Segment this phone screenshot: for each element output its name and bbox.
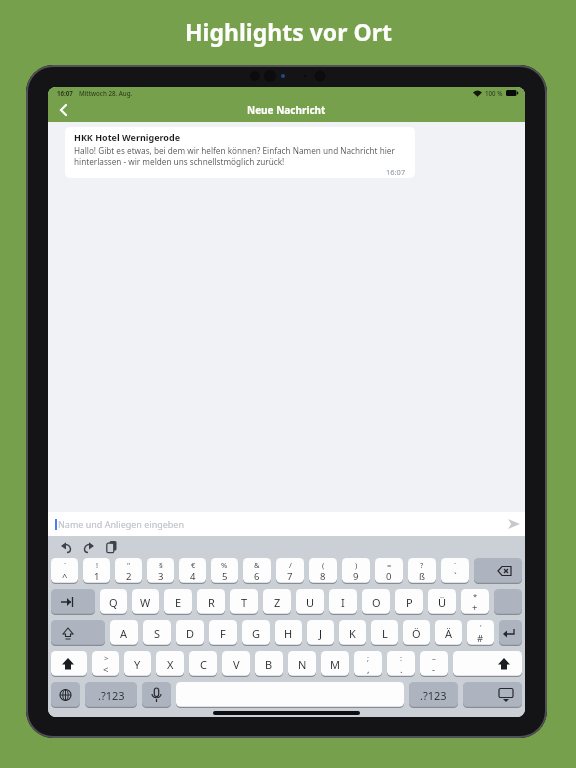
staticText: ?: [420, 560, 424, 570]
staticText: `: [454, 570, 457, 583]
staticText: 8: [320, 570, 326, 583]
button[interactable]: [474, 558, 522, 584]
staticText: ^: [62, 570, 68, 583]
staticText: Hallo! Gibt es etwas, bei dem wir helfen…: [74, 145, 395, 167]
button[interactable]: W: [132, 589, 159, 615]
button[interactable]: R: [197, 589, 225, 615]
staticText: =: [387, 560, 392, 570]
button[interactable]: >: [92, 651, 119, 677]
staticText: 16:07: [386, 167, 406, 175]
button[interactable]: [142, 682, 171, 708]
staticText: €: [191, 560, 196, 570]
button[interactable]: [51, 589, 95, 615]
button[interactable]: [51, 651, 87, 677]
button[interactable]: ": [115, 558, 142, 584]
button[interactable]: A: [110, 620, 138, 646]
button[interactable]: [176, 682, 404, 708]
button[interactable]: H: [275, 620, 302, 646]
button[interactable]: !: [83, 558, 110, 584]
staticText: 4: [190, 570, 196, 583]
staticText: +: [472, 601, 478, 614]
button[interactable]: E: [164, 589, 192, 615]
button[interactable]: O: [362, 589, 390, 615]
button[interactable]: Y: [124, 651, 151, 677]
button[interactable]: M: [321, 651, 349, 677]
staticText: Neue Nachricht: [247, 103, 326, 117]
staticText: 7: [287, 570, 293, 583]
button[interactable]: T: [230, 589, 258, 615]
button[interactable]: .?123: [85, 682, 137, 708]
button[interactable]: Q: [100, 589, 127, 615]
staticText: .: [400, 663, 403, 676]
staticText: ;: [367, 653, 370, 663]
button[interactable]: K: [339, 620, 366, 646]
button[interactable]: ': [467, 620, 494, 646]
button[interactable]: ´: [441, 558, 469, 584]
staticText: -: [432, 663, 436, 676]
button[interactable]: Ü: [428, 589, 456, 615]
button[interactable]: =: [375, 558, 403, 584]
staticText: X: [167, 657, 174, 672]
button[interactable]: Ö: [403, 620, 430, 646]
staticText: G: [252, 626, 261, 641]
staticText: U: [306, 595, 315, 610]
button[interactable]: [51, 620, 105, 646]
button[interactable]: ): [342, 558, 370, 584]
staticText: Name und Anliegen eingeben: [58, 518, 185, 530]
staticText: I: [341, 595, 345, 610]
button[interactable]: I: [329, 589, 357, 615]
button[interactable]: X: [156, 651, 184, 677]
button[interactable]: V: [222, 651, 250, 677]
button[interactable]: –: [420, 651, 448, 677]
button[interactable]: /: [276, 558, 304, 584]
button[interactable]: :: [387, 651, 415, 677]
button[interactable]: *: [461, 589, 489, 615]
button[interactable]: J: [307, 620, 334, 646]
button[interactable]: &: [243, 558, 271, 584]
button[interactable]: U: [296, 589, 324, 615]
staticText: ß: [419, 570, 425, 583]
button[interactable]: `: [51, 558, 78, 584]
button[interactable]: Ä: [435, 620, 462, 646]
button[interactable]: G: [242, 620, 270, 646]
button[interactable]: .?123: [409, 682, 458, 708]
button[interactable]: S: [143, 620, 171, 646]
button[interactable]: §: [147, 558, 174, 584]
staticText: B: [265, 657, 273, 672]
button[interactable]: Name und Anliegen eingeben: [48, 512, 525, 536]
button[interactable]: HKK Hotel Wernigerode: [65, 127, 415, 178]
staticText: %: [221, 560, 228, 570]
staticText: P: [406, 595, 413, 610]
button[interactable]: (: [309, 558, 337, 584]
button[interactable]: [494, 589, 522, 615]
staticText: Ü: [438, 595, 447, 610]
button[interactable]: [463, 682, 522, 708]
staticText: D: [186, 626, 195, 641]
staticText: E: [175, 595, 182, 610]
button[interactable]: P: [395, 589, 423, 615]
staticText: .?123: [420, 688, 447, 703]
button[interactable]: B: [255, 651, 283, 677]
button[interactable]: €: [179, 558, 206, 584]
staticText: #: [477, 632, 484, 645]
button[interactable]: F: [209, 620, 237, 646]
button[interactable]: [51, 682, 80, 708]
button[interactable]: C: [189, 651, 217, 677]
button[interactable]: Z: [263, 589, 291, 615]
button[interactable]: N: [288, 651, 316, 677]
button[interactable]: ?: [408, 558, 436, 584]
staticText: ´: [454, 560, 457, 570]
button[interactable]: D: [176, 620, 204, 646]
button[interactable]: %: [211, 558, 238, 584]
staticText: 100 %: [485, 89, 503, 97]
staticText: T: [241, 595, 248, 610]
staticText: 3: [158, 570, 164, 583]
button[interactable]: ;: [354, 651, 382, 677]
button[interactable]: [59, 104, 68, 116]
button[interactable]: L: [371, 620, 398, 646]
staticText: `: [64, 560, 67, 570]
button[interactable]: [453, 651, 522, 677]
staticText: ": [127, 560, 131, 570]
staticText: C: [200, 657, 207, 672]
button[interactable]: [499, 620, 522, 646]
